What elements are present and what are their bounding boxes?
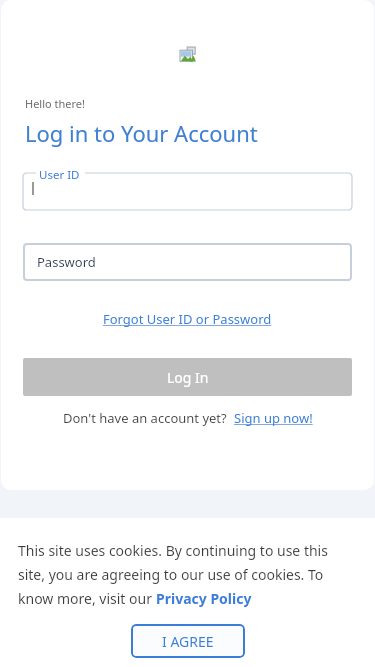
staticText: Privacy Policy (156, 589, 252, 608)
button[interactable]: User ID (23, 168, 352, 210)
staticText: site, you are agreeing to our use of coo… (18, 565, 324, 584)
staticText: Forgot User ID or Password (103, 310, 272, 328)
staticText: Log in to Your Account (25, 118, 258, 148)
staticText: know more, visit our (18, 589, 156, 608)
staticText: This site uses cookies. By continuing to… (18, 541, 328, 560)
staticText: Sign up now! (234, 409, 313, 427)
other: Logo image (180, 47, 196, 63)
button[interactable]: Log In (23, 358, 352, 396)
staticText: Password (37, 253, 96, 271)
button[interactable]: Password (23, 243, 352, 281)
staticText: Don't have an account yet? (63, 409, 227, 427)
staticText: Hello there! (25, 96, 86, 111)
staticText: Log In (167, 368, 209, 387)
button[interactable]: Sign up now! (234, 409, 313, 427)
button[interactable]: Forgot User ID or Password (97, 306, 278, 332)
button[interactable]: I AGREE (131, 624, 245, 658)
staticText: User ID (39, 167, 80, 183)
staticText: I AGREE (162, 632, 214, 651)
button[interactable]: Privacy Policy (156, 589, 252, 608)
